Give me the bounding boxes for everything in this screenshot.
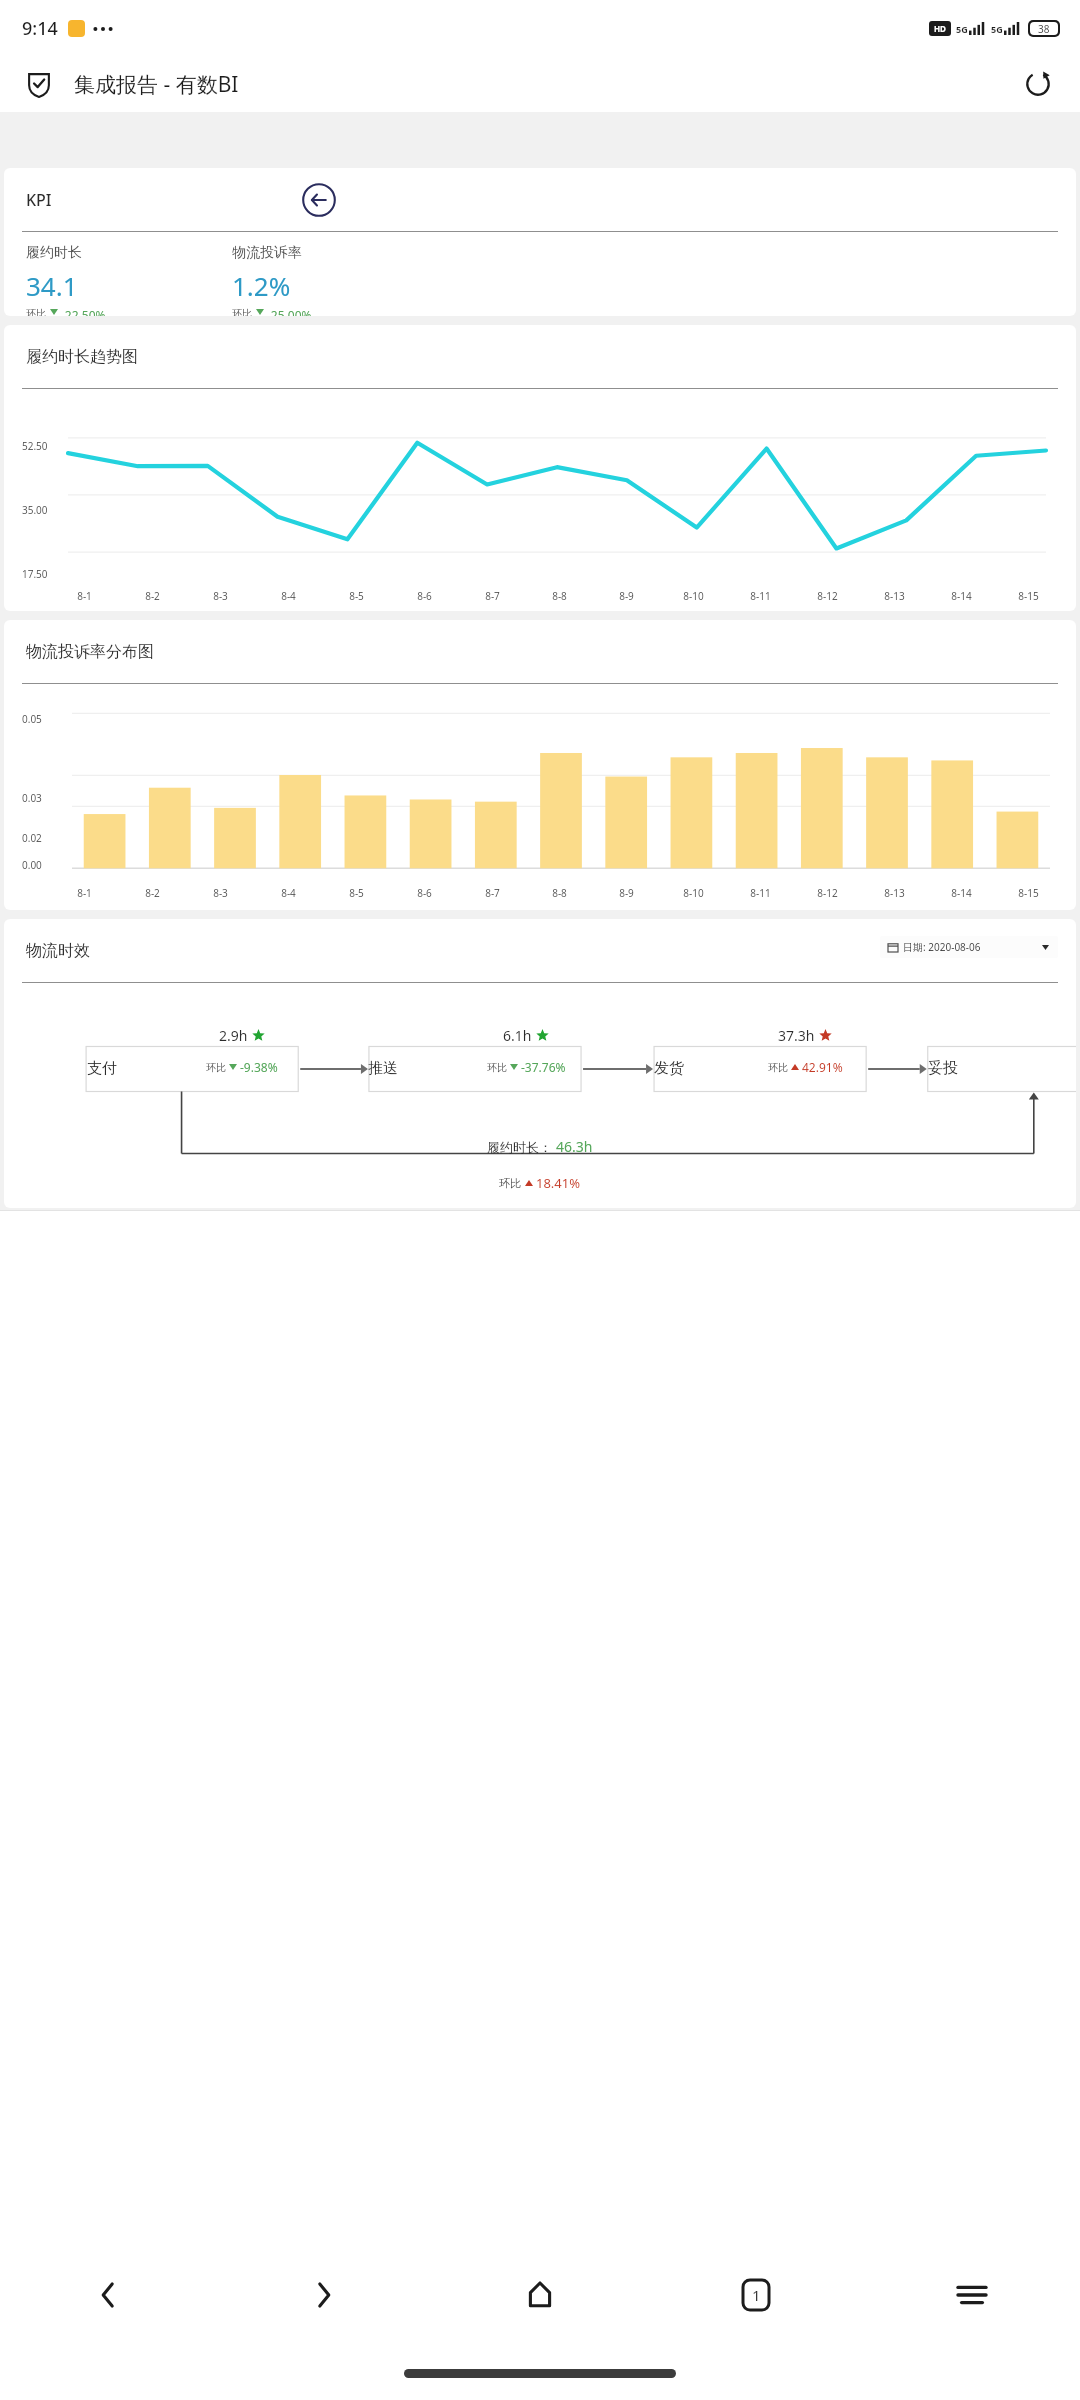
staticText: 8-10 [683,589,704,603]
staticText: 8-15 [1018,589,1039,603]
staticText: 8-13 [884,886,905,900]
staticText: -37.76% [521,1059,566,1075]
staticText: HD [934,23,946,34]
staticText: 8-9 [619,589,634,603]
staticText: 8-11 [750,589,771,603]
button[interactable]: Home [432,2240,648,2350]
staticText: 52.50 [22,439,48,453]
staticText: -22.50% [61,307,106,316]
staticText: 8-12 [817,886,838,900]
staticText: 1.2% [232,268,291,303]
staticText: 环比 [232,307,252,316]
staticText: 环比 [26,307,46,316]
staticText: 推送 [368,1059,398,1078]
staticText: 0.05 [22,712,42,726]
staticText: 8-1 [77,589,92,603]
staticText: 环比 [768,1061,788,1074]
staticText: 8-15 [1018,886,1039,900]
staticText: -9.38% [240,1059,278,1075]
button[interactable]: Refresh [1016,62,1060,106]
button[interactable]: Back [0,2240,216,2350]
staticText: 1 [752,2285,761,2305]
staticText: 物流投诉率分布图 [26,642,154,662]
staticText: 18.41% [536,1174,581,1192]
staticText: 8-8 [552,886,567,900]
staticText: 8-11 [750,886,771,900]
staticText: 8-10 [683,886,704,900]
staticText: 17.50 [22,567,48,581]
staticText: 环比 [206,1061,226,1074]
staticText: -25.00% [267,307,312,316]
staticText: 37.3h [778,1026,815,1045]
staticText: 8-1 [77,886,92,900]
staticText: 物流投诉率 [232,244,302,262]
staticText: 8-3 [213,589,228,603]
staticText: 8-8 [552,589,567,603]
button[interactable]: Tabs [648,2240,864,2350]
staticText: 35.00 [22,503,48,517]
staticText: 6.1h [503,1026,532,1045]
staticText: 8-4 [281,589,296,603]
staticText: 8-5 [349,886,364,900]
staticText: 8-12 [817,589,838,603]
staticText: 8-5 [349,589,364,603]
staticText: 42.91% [802,1059,843,1075]
staticText: 集成报告 - 有数BI [74,70,239,99]
staticText: 妥投 [928,1059,958,1078]
staticText: 0.02 [22,831,42,845]
staticText: 日期: 2020-08-06 [903,940,981,954]
staticText: 8-6 [417,589,432,603]
staticText: 环比 [487,1061,507,1074]
staticText: 46.3h [556,1137,593,1156]
staticText: 物流时效 [26,941,90,961]
staticText: 8-2 [145,589,160,603]
staticText: 8-2 [145,886,160,900]
staticText: 8-4 [281,886,296,900]
staticText: 8-7 [485,886,500,900]
staticText: KPI [26,189,52,211]
button[interactable]: Previous [297,178,341,222]
staticText: 5G [991,23,1003,35]
staticText: 9:14 [22,16,58,41]
button[interactable]: Menu [864,2240,1080,2350]
staticText: 0.03 [22,791,42,805]
staticText: 8-3 [213,886,228,900]
staticText: 履约时长 [26,244,82,262]
staticText: 发货 [654,1059,684,1078]
staticText: 履约时长趋势图 [26,347,138,367]
button[interactable]: 日期: 2020-08-06 [880,936,1058,958]
staticText: 8-9 [619,886,634,900]
staticText: 38 [1038,22,1050,35]
staticText: 履约时长： [487,1139,552,1155]
staticText: 0.00 [22,858,42,872]
staticText: 支付 [87,1059,117,1078]
staticText: 8-14 [951,589,972,603]
staticText: 5G [956,23,968,35]
staticText: 2.9h [219,1026,248,1045]
staticText: 34.1 [26,268,78,303]
staticText: 8-7 [485,589,500,603]
staticText: 8-14 [951,886,972,900]
staticText: 环比 [499,1176,521,1190]
staticText: 8-6 [417,886,432,900]
button[interactable]: Forward [216,2240,432,2350]
staticText: 8-13 [884,589,905,603]
button[interactable]: Secure [20,65,58,103]
